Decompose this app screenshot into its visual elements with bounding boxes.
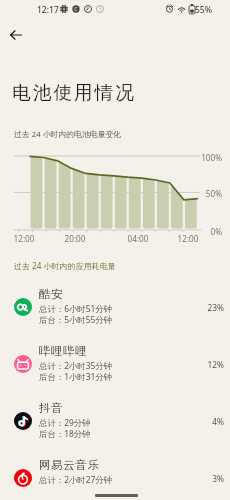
staticText: 12:00 bbox=[172, 233, 204, 244]
staticText: 后台：18分钟 bbox=[39, 428, 91, 439]
staticText: 100% bbox=[186, 152, 222, 163]
button[interactable]: 哔哩哔哩 bbox=[0, 344, 230, 401]
staticText: 酷安 bbox=[39, 287, 64, 301]
staticText: 后台：1小时31分钟 bbox=[39, 371, 113, 382]
staticText: 过去 24 小时内的应用耗电量 bbox=[14, 260, 116, 271]
staticText: 总计：29分钟 bbox=[39, 417, 91, 428]
staticText: 网易云音乐 bbox=[39, 458, 100, 472]
staticText: 0% bbox=[186, 226, 222, 237]
staticText: 过去 24 小时内的电池电量变化 bbox=[14, 129, 122, 140]
button[interactable]: 抖音 bbox=[0, 401, 230, 458]
staticText: 12:00 bbox=[8, 233, 40, 244]
staticText: 总计：2小时35分钟 bbox=[39, 360, 113, 371]
staticText: 50% bbox=[186, 188, 222, 199]
button[interactable]: 酷安 bbox=[0, 287, 230, 344]
staticText: 55% bbox=[195, 4, 212, 16]
staticText: 总计：2小时27分钟 bbox=[39, 474, 113, 485]
staticText: 后台：5小时55分钟 bbox=[39, 314, 113, 325]
staticText: 23% bbox=[190, 302, 224, 313]
staticText: 抖音 bbox=[39, 401, 64, 415]
staticText: 04:00 bbox=[122, 233, 154, 244]
staticText: 12% bbox=[190, 359, 224, 370]
button[interactable]: 网易云音乐 bbox=[0, 458, 230, 500]
staticText: 12:17 bbox=[37, 4, 59, 16]
staticText: 20:00 bbox=[59, 233, 91, 244]
button[interactable]: Back bbox=[3, 22, 29, 48]
staticText: 3% bbox=[190, 473, 224, 484]
staticText: 电池使用情况 bbox=[12, 81, 137, 104]
staticText: 总计：6小时51分钟 bbox=[39, 303, 113, 314]
staticText: 4% bbox=[190, 416, 224, 427]
staticText: 哔哩哔哩 bbox=[39, 344, 88, 358]
